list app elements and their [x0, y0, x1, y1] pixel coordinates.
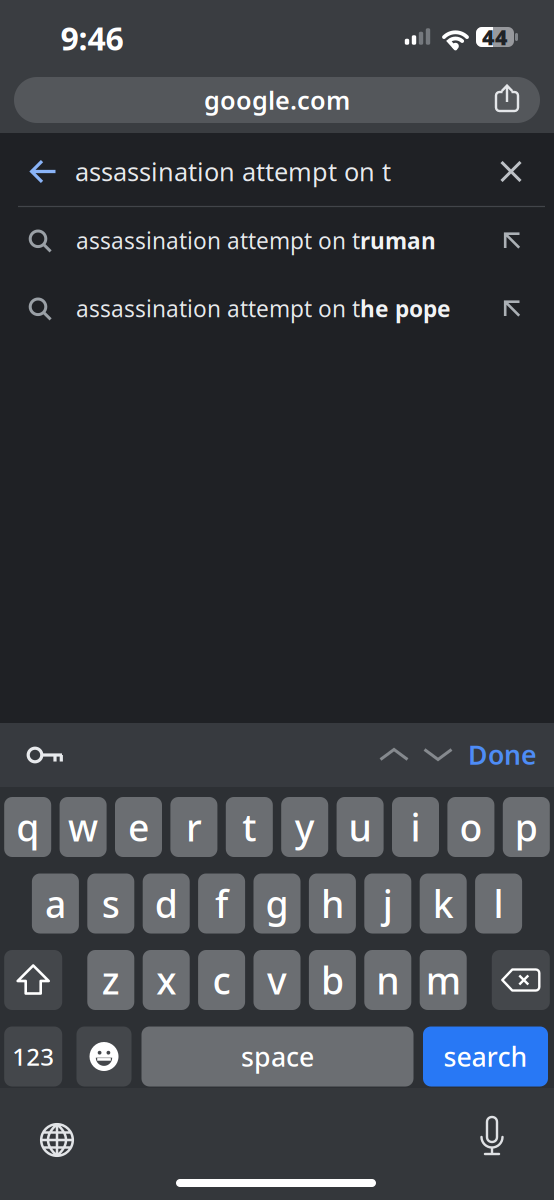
button[interactable]: r — [170, 797, 217, 857]
staticText: c — [213, 955, 231, 1005]
button[interactable]: k — [420, 873, 467, 933]
staticText: 123 — [12, 1041, 54, 1072]
button[interactable]: f — [198, 873, 245, 933]
button[interactable]: m — [420, 950, 467, 1010]
button[interactable]: c — [198, 950, 245, 1010]
button[interactable]: assassination attempt on t — [0, 274, 554, 342]
button[interactable] — [35, 1118, 79, 1162]
staticText: o — [459, 802, 482, 852]
staticText: g — [265, 879, 288, 928]
button[interactable]: p — [503, 797, 550, 857]
staticText: Done — [468, 737, 537, 772]
button[interactable]: v — [253, 950, 300, 1010]
staticText: p — [515, 802, 538, 852]
staticText: z — [102, 955, 120, 1005]
button[interactable]: w — [60, 797, 107, 857]
staticText: assassination attempt on t — [76, 293, 360, 323]
staticText: assassination attempt on t — [75, 155, 391, 188]
button[interactable]: z — [87, 950, 134, 1010]
staticText: x — [156, 955, 176, 1005]
button[interactable] — [379, 747, 409, 761]
staticText: i — [410, 802, 420, 852]
button[interactable] — [423, 747, 453, 761]
button[interactable]: h — [309, 873, 356, 933]
staticText: q — [16, 802, 39, 852]
staticText: t — [242, 802, 256, 852]
button[interactable] — [492, 950, 550, 1010]
staticText: a — [45, 879, 66, 928]
button[interactable]: 123 — [4, 1026, 62, 1086]
button[interactable]: t — [226, 797, 273, 857]
button[interactable]: n — [364, 950, 411, 1010]
staticText: l — [494, 879, 504, 928]
staticText: m — [426, 955, 461, 1005]
staticText: r — [186, 802, 202, 852]
button[interactable] — [76, 1026, 131, 1086]
staticText: google.com — [204, 83, 350, 117]
button[interactable]: search — [423, 1026, 548, 1086]
button[interactable]: a — [32, 873, 79, 933]
staticText: space — [241, 1039, 314, 1074]
staticText: f — [215, 879, 228, 928]
button[interactable] — [500, 160, 522, 182]
staticText: w — [68, 802, 98, 852]
button[interactable]: u — [337, 797, 384, 857]
button[interactable]: d — [143, 873, 190, 933]
staticText: v — [267, 955, 287, 1005]
staticText: k — [433, 879, 454, 928]
button[interactable]: space — [141, 1026, 413, 1086]
staticText: e — [128, 802, 149, 852]
staticText: d — [155, 879, 178, 928]
staticText: u — [349, 802, 372, 852]
button[interactable]: e — [115, 797, 162, 857]
button[interactable] — [26, 744, 64, 766]
button[interactable]: x — [143, 950, 190, 1010]
button[interactable]: Done — [468, 737, 537, 772]
staticText: b — [321, 955, 344, 1005]
staticText: j — [383, 879, 393, 928]
button[interactable]: y — [281, 797, 328, 857]
button[interactable] — [472, 1115, 512, 1163]
button[interactable]: b — [309, 950, 356, 1010]
staticText: assassination attempt on t — [76, 225, 360, 255]
staticText: 9:46 — [60, 17, 123, 59]
staticText: s — [102, 879, 120, 928]
button[interactable] — [30, 159, 56, 183]
staticText: 44 — [482, 23, 508, 51]
button[interactable]: google.com — [14, 77, 540, 123]
button[interactable]: s — [87, 873, 134, 933]
staticText: ruman — [360, 225, 436, 255]
button[interactable]: g — [253, 873, 300, 933]
button[interactable]: o — [447, 797, 494, 857]
staticText: h — [321, 879, 344, 928]
button[interactable] — [4, 950, 62, 1010]
button[interactable]: assassination attempt on t — [0, 206, 554, 274]
button[interactable]: l — [475, 873, 522, 933]
staticText: n — [376, 955, 399, 1005]
staticText: search — [443, 1039, 527, 1074]
button[interactable] — [494, 83, 520, 113]
button[interactable]: q — [4, 797, 51, 857]
staticText: y — [295, 802, 315, 852]
staticText: he pope — [360, 293, 451, 323]
button[interactable]: i — [392, 797, 439, 857]
button[interactable]: j — [364, 873, 411, 933]
